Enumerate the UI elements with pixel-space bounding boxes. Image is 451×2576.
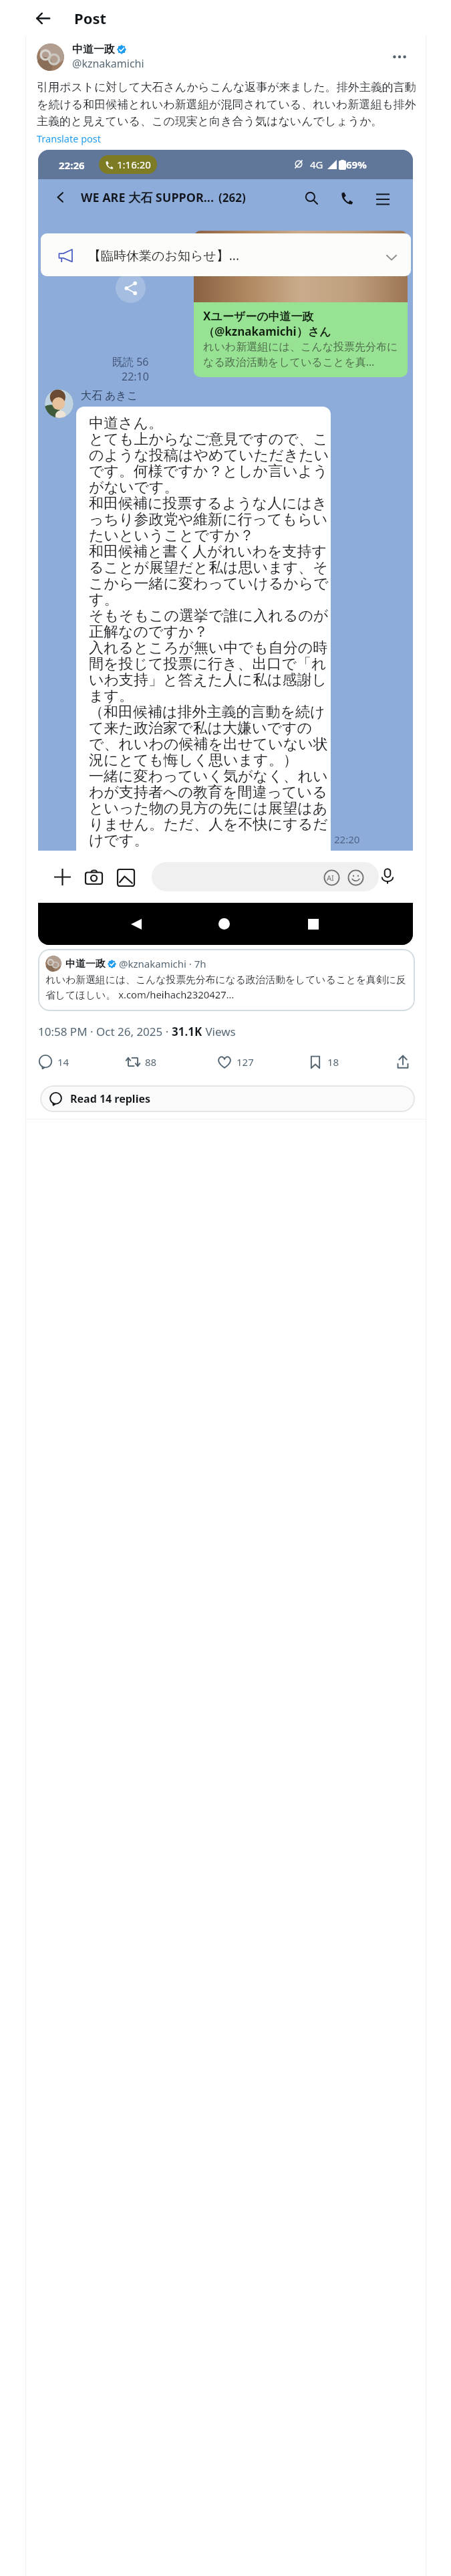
- button[interactable]: Share: [116, 273, 146, 303]
- staticText: れいわ新選組には、こんな投票先分布になる政治活動をしていることを真…: [203, 340, 404, 369]
- button[interactable]: Read 14 replies: [40, 1085, 415, 1112]
- staticText: 22:26: [59, 158, 85, 172]
- staticText: 22:20: [334, 833, 360, 846]
- staticText: 69%: [346, 158, 367, 171]
- staticText: 4G: [310, 158, 323, 171]
- button[interactable]: Share: [396, 1051, 410, 1073]
- staticText: Read 14 replies: [70, 1091, 151, 1106]
- button[interactable]: Like: [217, 1051, 254, 1073]
- staticText: 中道さん。 とても上からなご意見ですので、このような投稿はやめていただきたいです…: [89, 414, 329, 849]
- staticText: 【臨時休業のお知らせ】...: [88, 247, 240, 264]
- staticText: 中道一政: [72, 43, 115, 56]
- button[interactable]: 【臨時休業のお知らせ】...: [41, 233, 411, 276]
- button[interactable]: Translate post: [37, 132, 102, 145]
- staticText: れいわ新選組には、こんな投票先分布になる政治活動をしていることを真剣に反省してほ…: [45, 974, 410, 1002]
- staticText: 88: [145, 1055, 157, 1069]
- staticText: 14: [57, 1055, 69, 1069]
- staticText: Post: [74, 8, 107, 28]
- staticText: Views: [202, 1024, 236, 1039]
- staticText: 大石 あきこ: [81, 388, 138, 403]
- staticText: 中道一政: [65, 958, 106, 970]
- staticText: @kznakamichi · 7h: [119, 957, 206, 970]
- staticText: 10:58 PM · Oct 26, 2025 ·: [38, 1024, 172, 1039]
- staticText: 127: [237, 1055, 254, 1069]
- staticText: WE ARE 大石 SUPPOR...: [81, 189, 214, 206]
- staticText: 22:10: [122, 369, 149, 384]
- button[interactable]: Back: [30, 5, 55, 31]
- staticText: Xユーザーの中道一政: [203, 308, 314, 324]
- button[interactable]: More options: [386, 43, 413, 70]
- button[interactable]: Reply: [38, 1051, 69, 1073]
- staticText: @kznakamichi: [72, 56, 144, 71]
- staticText: 31.1K: [172, 1024, 202, 1039]
- button[interactable]: Bookmark: [308, 1051, 339, 1073]
- staticText: 1:16:20: [117, 158, 151, 171]
- button[interactable]: 中道一政: [38, 949, 415, 1011]
- staticText: 既読 56: [112, 354, 149, 369]
- button[interactable]: Repost: [126, 1051, 157, 1073]
- staticText: 引用ポストに対して大石さんからこんな返事が来ました。排外主義的言動を続ける和田候…: [37, 80, 426, 128]
- staticText: AI: [327, 873, 334, 883]
- staticText: （@kznakamichi）さん: [203, 324, 331, 339]
- staticText: 18: [327, 1055, 339, 1069]
- staticText: (262): [218, 190, 246, 205]
